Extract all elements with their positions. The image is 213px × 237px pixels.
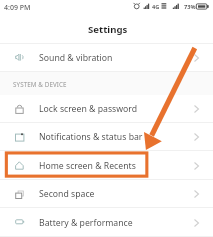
button[interactable]: Home screen & Recents [0,152,213,180]
staticText: Notifications & status bar [39,131,143,143]
staticText: Home screen & Recents [39,160,136,172]
staticText: 73% [184,3,196,11]
button[interactable]: Sound & vibration [0,44,213,72]
button[interactable]: Battery & performance [0,209,213,237]
staticText: 4G [152,3,160,11]
staticText: Battery & performance [39,217,133,229]
button[interactable]: Lock screen & password [0,95,213,123]
staticText: Second space [39,188,95,200]
staticText: Settings [88,23,128,36]
staticText: Sound & vibration [39,52,113,64]
staticText: Lock screen & password [39,103,138,115]
button[interactable]: Notifications & status bar [0,123,213,151]
button[interactable]: Second space [0,180,213,208]
staticText: SYSTEM & DEVICE [13,80,67,89]
staticText: 4:09 PM [4,3,31,13]
